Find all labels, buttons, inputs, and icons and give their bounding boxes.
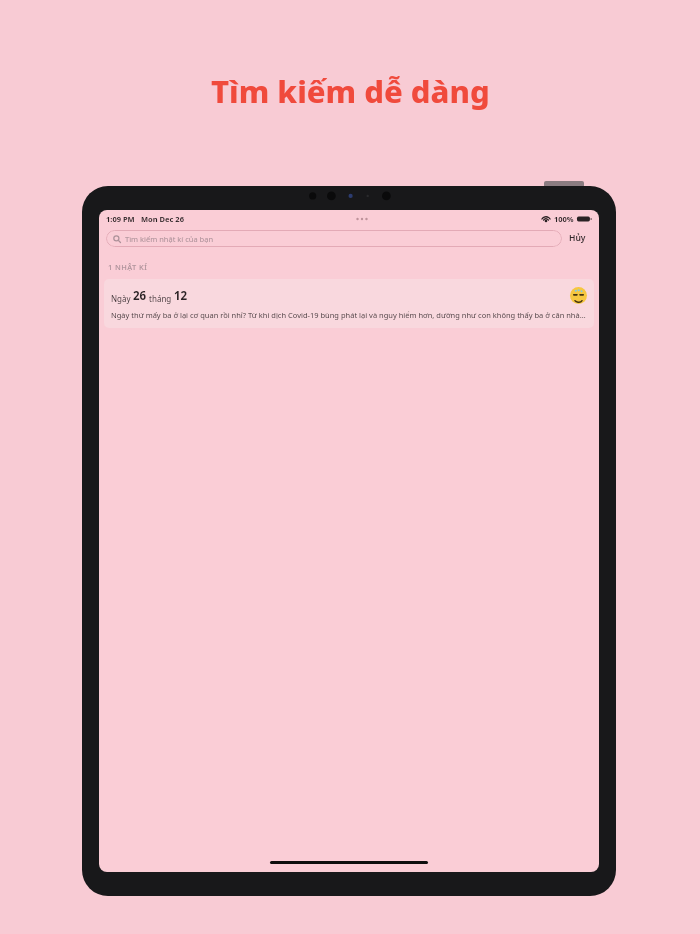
staticText: 26 [133, 288, 147, 304]
staticText: Tìm kiếm nhật kí của bạn [125, 234, 214, 244]
button[interactable]: Ngày [104, 279, 594, 328]
button[interactable]: Tìm kiếm nhật kí của bạn [106, 230, 562, 247]
staticText: Ngày [111, 293, 133, 304]
button[interactable]: Hủy [562, 229, 593, 247]
staticText: Hủy [569, 232, 586, 244]
other: Mood: worried [570, 287, 587, 304]
staticText: 100% [554, 214, 574, 224]
staticText: 1:09 PM [106, 214, 135, 224]
staticText: 12 [174, 288, 188, 304]
staticText: Tìm kiếm dễ dàng [211, 70, 490, 112]
staticText: Mon Dec 26 [141, 214, 184, 224]
staticText: tháng [147, 293, 174, 304]
staticText: Ngày thứ mấy ba ở lại cơ quan rồi nhỉ? T… [111, 310, 587, 320]
staticText: 1 NHẬT KÍ [108, 262, 148, 272]
